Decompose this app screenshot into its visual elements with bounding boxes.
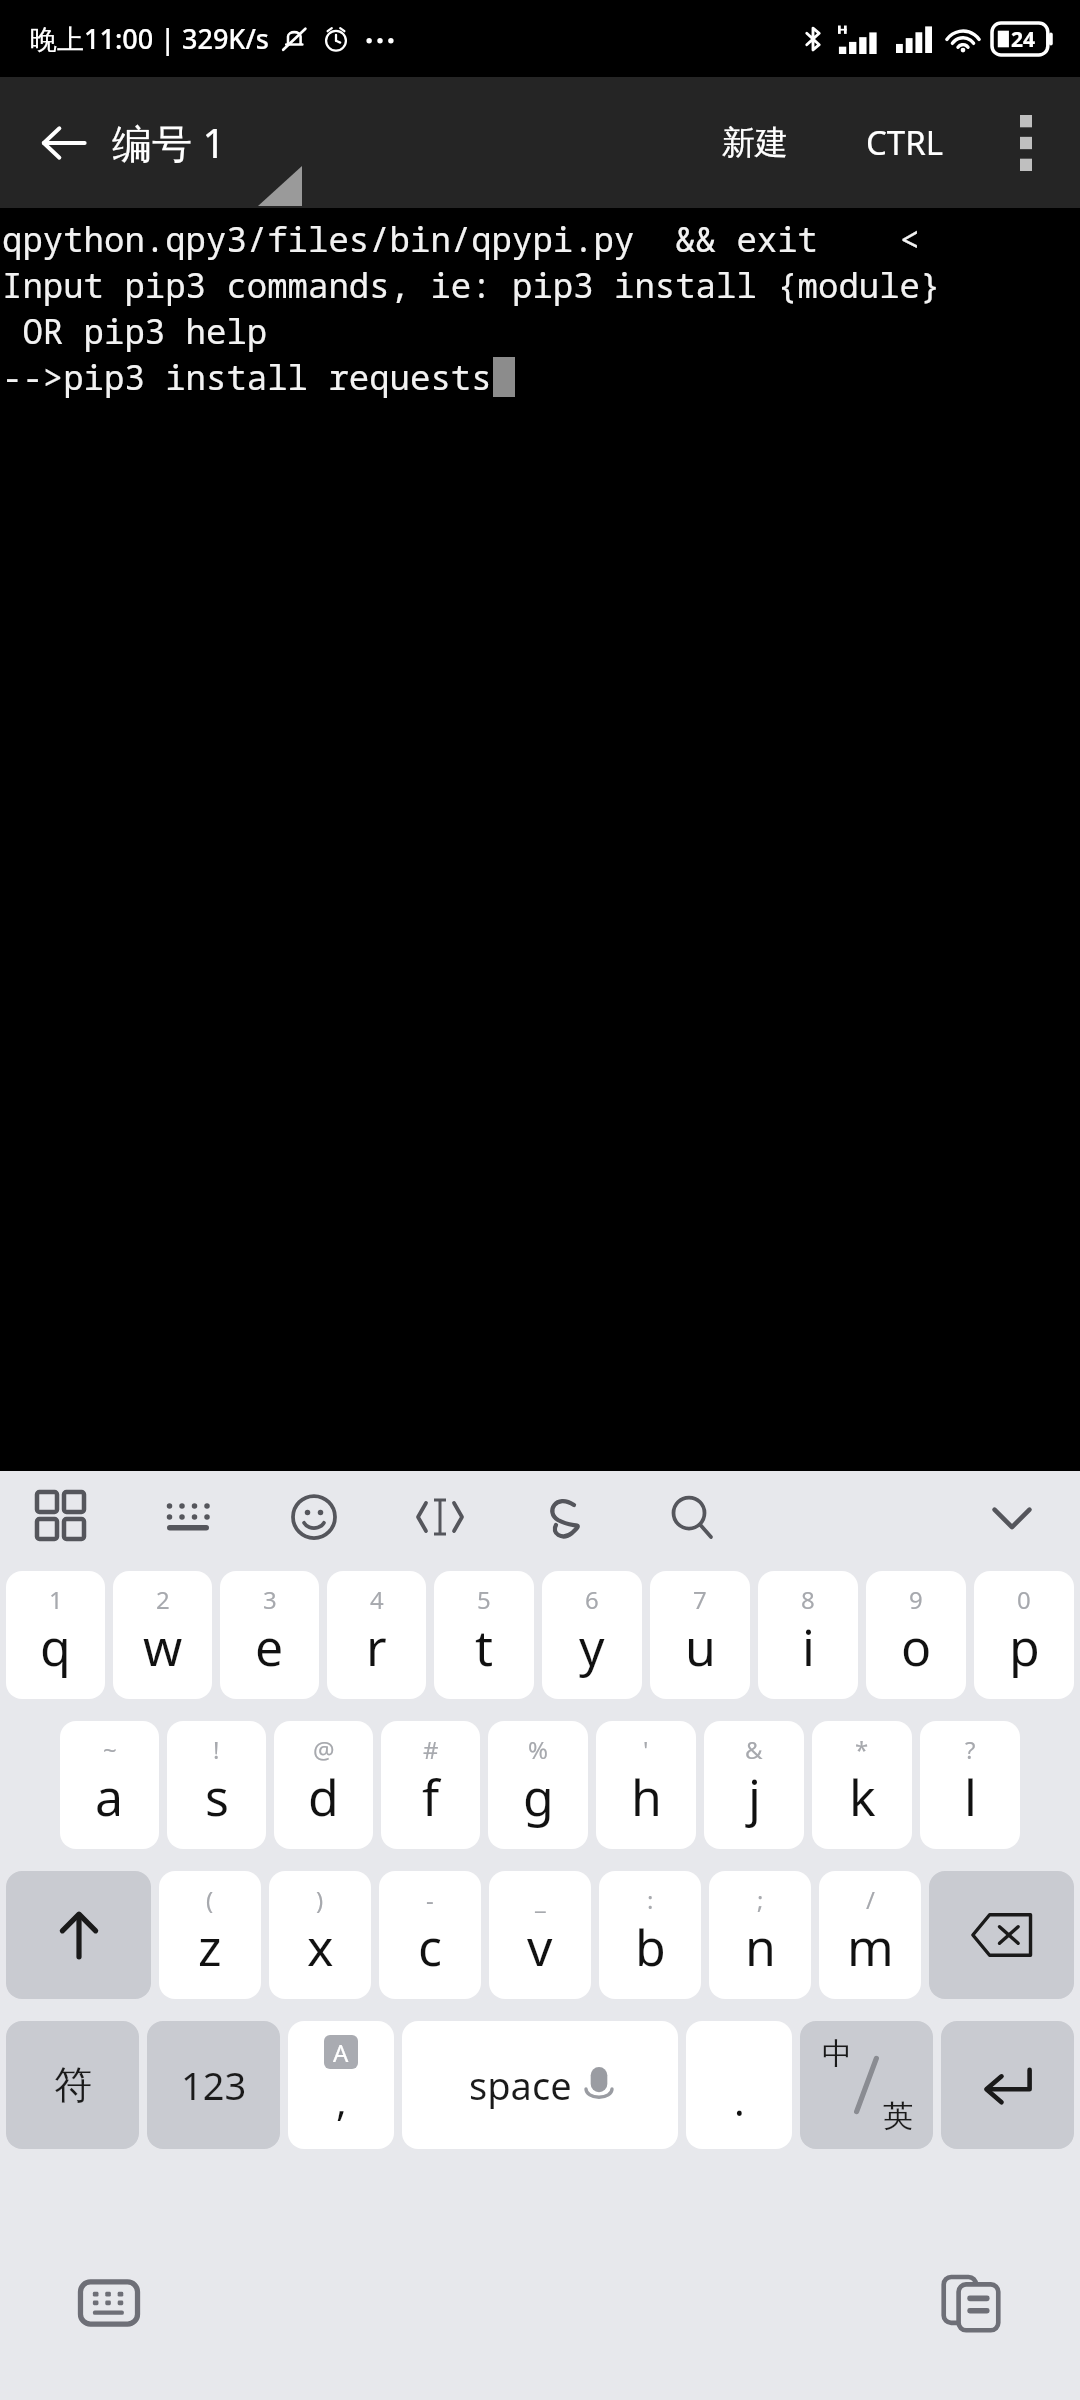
button[interactable]: 0 [974, 1571, 1074, 1699]
staticText: 新建 [722, 122, 788, 164]
button[interactable]: . [686, 2021, 792, 2149]
button[interactable]: ' [596, 1721, 696, 1849]
button[interactable]: ! [167, 1721, 266, 1849]
button[interactable]: 6 [542, 1571, 642, 1699]
staticText: f [422, 1763, 440, 1831]
staticText: a [95, 1763, 124, 1831]
button[interactable]: Emoji [276, 1479, 352, 1555]
button[interactable]: ~ [60, 1721, 159, 1849]
staticText: s [205, 1763, 229, 1831]
button[interactable]: ; [709, 1871, 811, 1999]
button[interactable]: ) [269, 1871, 371, 1999]
staticText: j [748, 1763, 761, 1831]
staticText: . [734, 2073, 745, 2127]
button[interactable]: 123 [147, 2021, 280, 2149]
staticText: ) [316, 1883, 324, 1916]
button[interactable]: Hide keyboard [974, 1479, 1050, 1555]
staticText: z [198, 1913, 222, 1981]
staticText: 8 [801, 1583, 815, 1616]
staticText: 6 [585, 1583, 599, 1616]
button[interactable]: Search [654, 1479, 730, 1555]
button[interactable]: # [381, 1721, 480, 1849]
staticText: , [336, 2073, 347, 2127]
staticText: 符 [54, 2061, 92, 2109]
staticText: ? [965, 1733, 976, 1766]
staticText: g [523, 1763, 554, 1831]
staticText: c [418, 1913, 442, 1981]
staticText: u [685, 1613, 716, 1681]
staticText: 7 [693, 1583, 707, 1616]
button[interactable]: Clipboard [528, 1479, 604, 1555]
staticText: 9 [909, 1583, 923, 1616]
staticText: & [745, 1733, 763, 1766]
staticText: t [475, 1613, 494, 1681]
staticText: space [469, 2059, 572, 2111]
button[interactable]: _ [489, 1871, 591, 1999]
button[interactable]: 编号 1 [112, 115, 226, 170]
button[interactable]: : [599, 1871, 701, 1999]
staticText: 编号 1 [112, 115, 226, 170]
staticText: 3 [263, 1583, 277, 1616]
staticText: Input pip3 commands, ie: pip3 install {m… [2, 262, 941, 308]
staticText: y [579, 1613, 605, 1681]
staticText: ' [643, 1733, 649, 1766]
button[interactable]: - [379, 1871, 481, 1999]
button[interactable]: 7 [650, 1571, 750, 1699]
staticText: 123 [181, 2059, 247, 2111]
button[interactable]: CTRL [846, 104, 964, 181]
staticText: k [849, 1763, 876, 1831]
button[interactable]: Shift [6, 1871, 151, 1999]
button[interactable]: ? [920, 1721, 1020, 1849]
staticText: o [901, 1613, 932, 1681]
button[interactable]: 5 [434, 1571, 534, 1699]
button[interactable]: Switch input method [66, 2260, 152, 2346]
button[interactable]: 2 [113, 1571, 212, 1699]
staticText: / [866, 1883, 875, 1916]
button[interactable]: 4 [327, 1571, 426, 1699]
staticText: OR pip3 help [2, 308, 268, 354]
button[interactable]: Backspace [929, 1871, 1074, 1999]
staticText: e [255, 1613, 284, 1681]
staticText: ; [757, 1883, 764, 1916]
button[interactable]: 1 [6, 1571, 105, 1699]
button[interactable]: @ [274, 1721, 373, 1849]
staticText: qpython.qpy3/files/bin/qpypi.py && exit … [2, 216, 920, 262]
button[interactable]: Back [24, 103, 104, 183]
button[interactable]: More options [988, 105, 1064, 181]
button[interactable]: 9 [866, 1571, 966, 1699]
staticText: 4 [370, 1583, 384, 1616]
button[interactable]: A [288, 2021, 394, 2149]
button[interactable]: % [488, 1721, 588, 1849]
staticText: % [528, 1733, 548, 1766]
button[interactable]: Enter [941, 2021, 1074, 2149]
staticText: n [745, 1913, 776, 1981]
button[interactable]: Apps [24, 1479, 100, 1555]
staticText: ~ [103, 1733, 117, 1766]
staticText: x [307, 1913, 334, 1981]
button[interactable]: ( [159, 1871, 261, 1999]
staticText: ( [206, 1883, 214, 1916]
button[interactable]: 3 [220, 1571, 319, 1699]
staticText: -->pip3 install requests [2, 354, 492, 400]
staticText: * [855, 1733, 869, 1766]
staticText: h [631, 1763, 662, 1831]
button[interactable]: space [402, 2021, 678, 2149]
staticText: ! [213, 1733, 220, 1766]
staticText: r [366, 1613, 387, 1681]
staticText: _ [535, 1883, 546, 1916]
button[interactable]: Keyboard layout [150, 1479, 226, 1555]
button[interactable]: 8 [758, 1571, 858, 1699]
staticText: 2 [156, 1583, 170, 1616]
staticText: 1 [49, 1583, 63, 1616]
button[interactable]: / [819, 1871, 921, 1999]
button[interactable]: 中 [800, 2021, 933, 2149]
staticText: d [308, 1763, 339, 1831]
button[interactable]: Text cursor [402, 1479, 478, 1555]
staticText: CTRL [866, 120, 944, 165]
button[interactable]: 符 [6, 2021, 139, 2149]
button[interactable]: & [704, 1721, 804, 1849]
button[interactable]: Clipboard history [928, 2260, 1014, 2346]
button[interactable]: 新建 [700, 106, 810, 180]
button[interactable]: * [812, 1721, 912, 1849]
staticText: : [647, 1883, 654, 1916]
